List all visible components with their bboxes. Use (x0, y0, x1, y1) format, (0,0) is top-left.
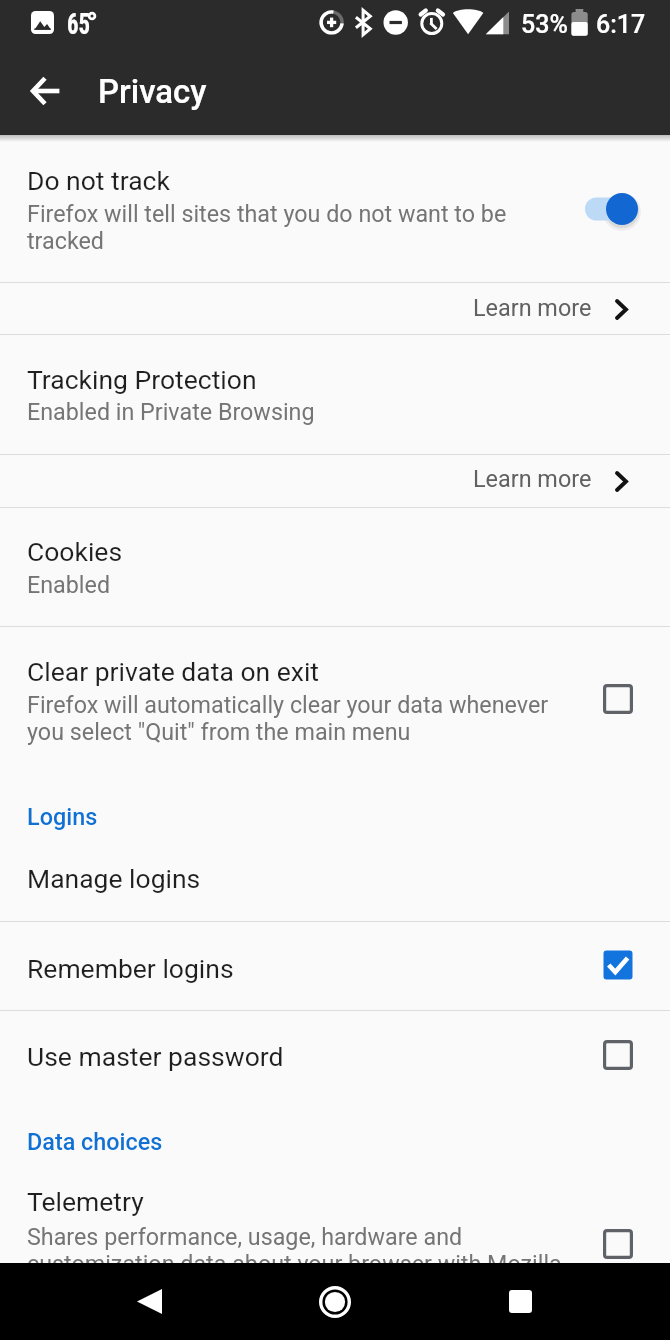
button[interactable]: Checked (589, 936, 647, 994)
button[interactable] (0, 508, 670, 626)
staticText: Remember logins (27, 953, 234, 984)
button[interactable] (0, 335, 670, 454)
button[interactable] (0, 135, 670, 282)
staticText: Use master password (27, 1041, 284, 1072)
staticText: Do not track (27, 165, 170, 196)
button[interactable]: Back (111, 1263, 188, 1340)
staticText: Manage logins (27, 863, 201, 894)
button[interactable] (0, 455, 670, 507)
button[interactable] (0, 1163, 670, 1263)
staticText: Logins (27, 803, 98, 830)
staticText: Clear private data on exit (27, 656, 320, 687)
staticText: Cookies (27, 536, 123, 567)
staticText: Privacy (98, 72, 207, 111)
button[interactable] (0, 922, 670, 1010)
button[interactable]: Navigate up (17, 63, 73, 119)
staticText: Enabled in Private Browsing (27, 398, 577, 425)
staticText: Enabled (27, 571, 577, 598)
button[interactable]: Do not track toggle (584, 191, 646, 229)
button[interactable] (0, 831, 670, 921)
button[interactable] (0, 627, 670, 765)
staticText: Learn more (473, 465, 592, 492)
staticText: 6:17 (596, 10, 646, 39)
staticText: Telemetry (27, 1186, 144, 1217)
button[interactable]: Unchecked (589, 1215, 647, 1273)
button[interactable]: Unchecked (589, 670, 647, 728)
button[interactable]: Recent apps (482, 1263, 559, 1340)
staticText: Shares performance, usage, hardware and … (27, 1223, 577, 1277)
button[interactable]: Home (296, 1263, 373, 1340)
button[interactable] (0, 283, 670, 334)
button[interactable]: Unchecked (589, 1026, 647, 1084)
staticText: Firefox will tell sites that you do not … (27, 200, 577, 254)
button[interactable] (0, 1011, 670, 1099)
staticText: Firefox will automatically clear your da… (27, 691, 577, 745)
staticText: 65 (67, 7, 90, 42)
staticText: Learn more (473, 294, 592, 321)
staticText: Tracking Protection (27, 364, 257, 395)
staticText: 53% (521, 10, 568, 39)
staticText: Data choices (27, 1128, 163, 1155)
